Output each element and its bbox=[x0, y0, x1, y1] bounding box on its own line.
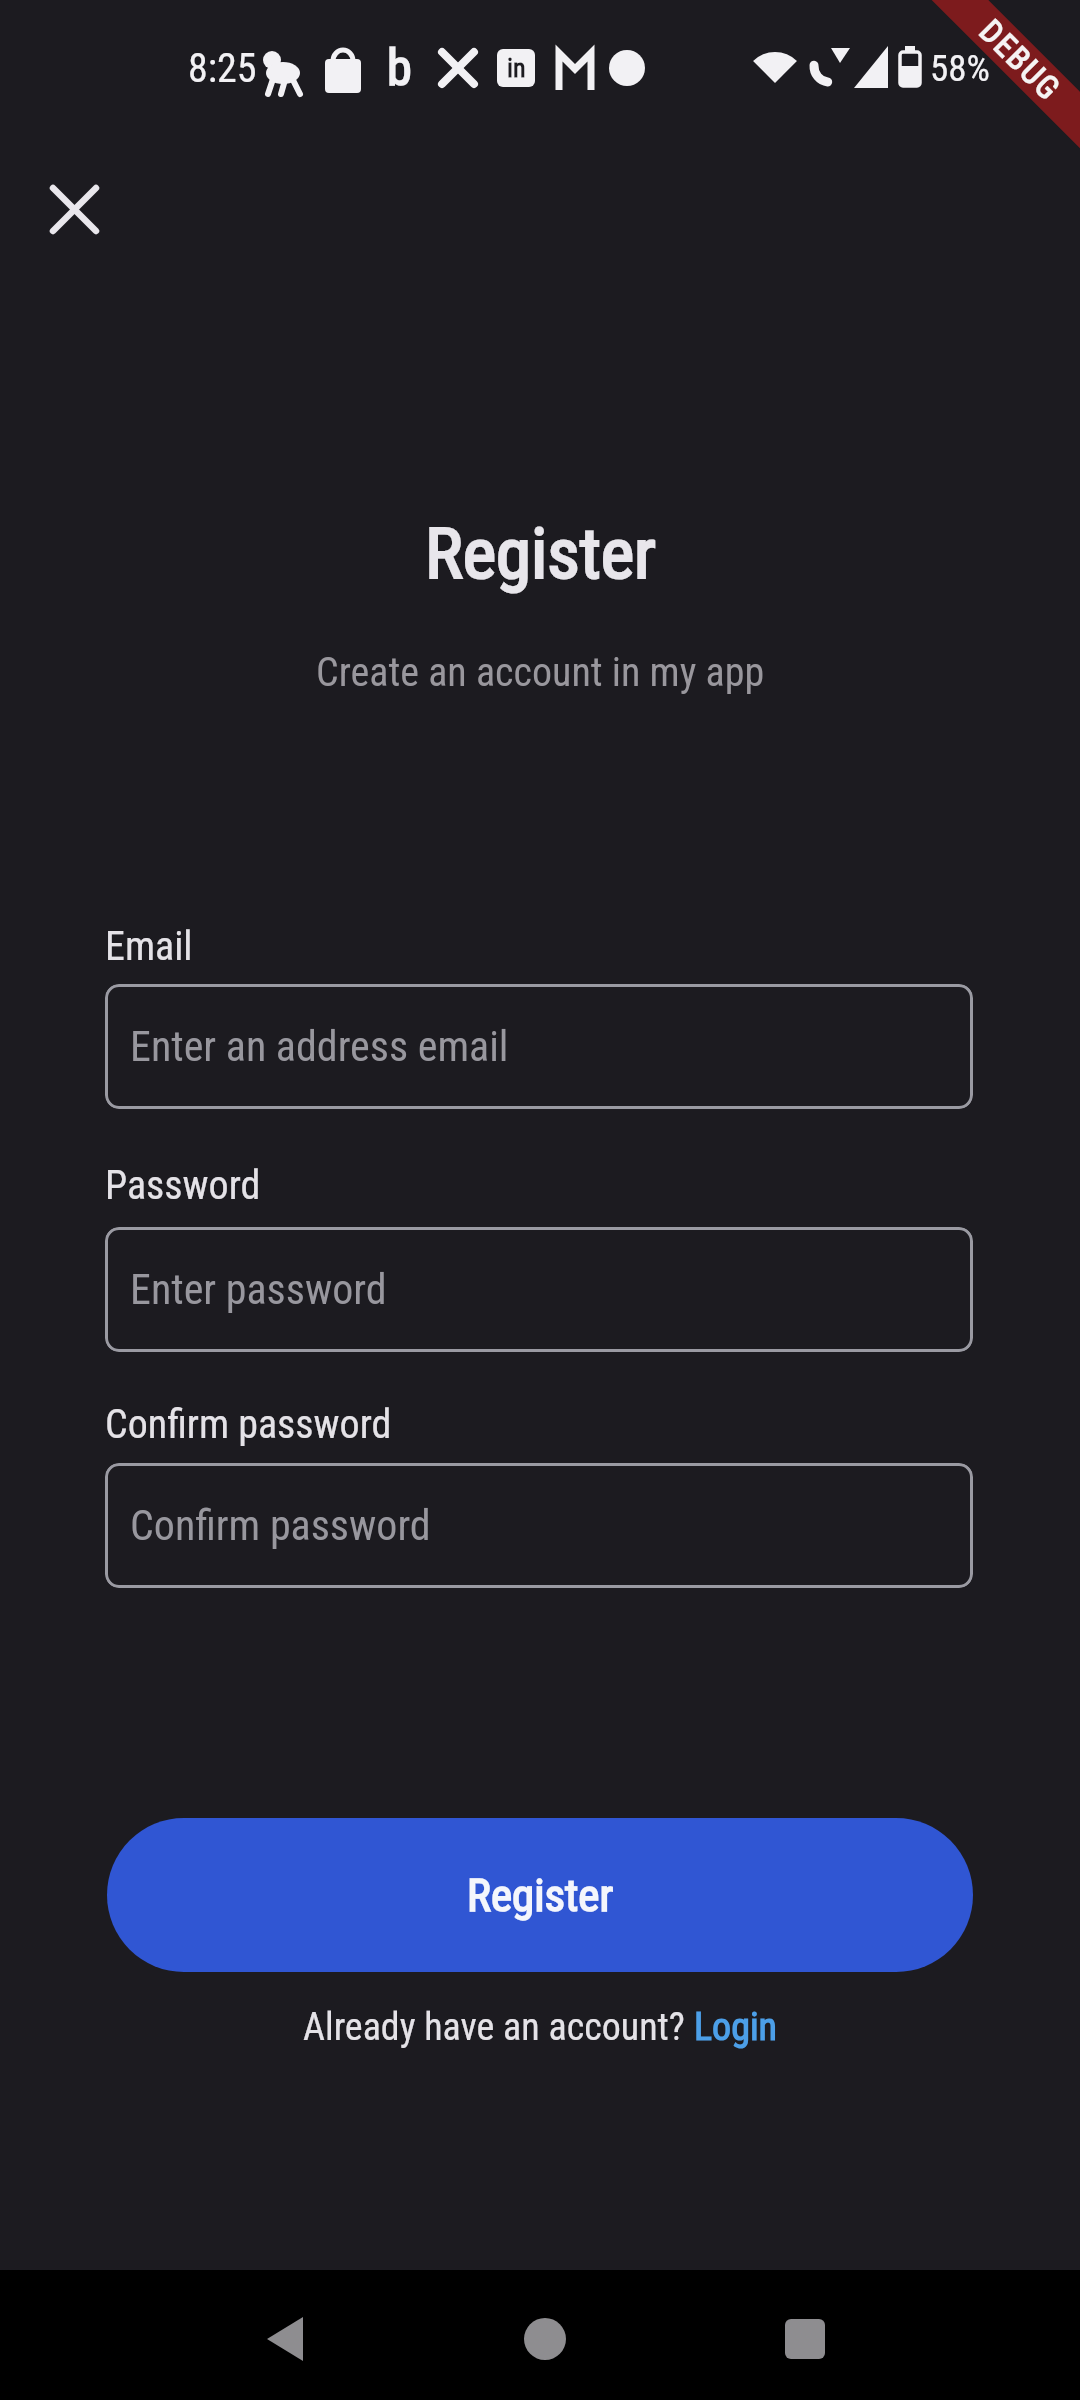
staticText: Confirm password bbox=[130, 1501, 431, 1550]
staticText: Password bbox=[105, 1162, 261, 1209]
button[interactable]: Enter an address email bbox=[105, 984, 973, 1109]
button[interactable]: Register bbox=[107, 1818, 973, 1972]
staticText: Register bbox=[467, 1869, 614, 1922]
staticText: Confirm password bbox=[105, 1401, 392, 1448]
staticText: 8:25 bbox=[188, 45, 257, 92]
button[interactable] bbox=[245, 2299, 325, 2379]
button[interactable] bbox=[765, 2299, 845, 2379]
button[interactable]: Confirm password bbox=[105, 1463, 973, 1588]
button[interactable]: Enter password bbox=[105, 1227, 973, 1352]
staticText: in bbox=[507, 53, 526, 83]
staticText: b bbox=[387, 39, 412, 98]
staticText: 58% bbox=[930, 47, 990, 90]
staticText: Register bbox=[425, 512, 656, 595]
staticText: Enter an address email bbox=[130, 1022, 509, 1071]
staticText: Already have an account? bbox=[303, 2005, 694, 2050]
staticText: Create an account in my app bbox=[316, 649, 765, 696]
staticText: Enter password bbox=[130, 1265, 387, 1314]
button[interactable] bbox=[505, 2299, 585, 2379]
staticText: Email bbox=[105, 923, 193, 970]
staticText: DEBUG bbox=[972, 12, 1069, 109]
button[interactable]: Login bbox=[694, 2005, 778, 2050]
button[interactable] bbox=[30, 165, 120, 255]
